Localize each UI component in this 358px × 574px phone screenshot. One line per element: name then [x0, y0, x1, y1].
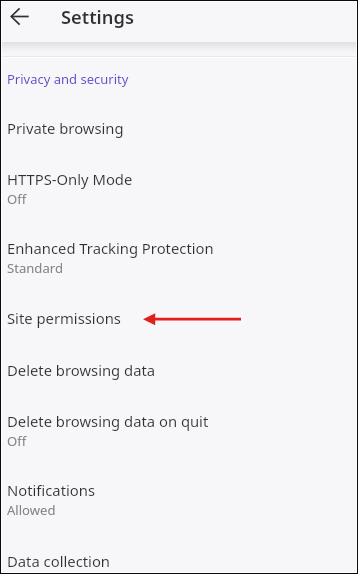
staticText: Data collection: [7, 551, 110, 571]
button[interactable]: Data collection: [2, 541, 356, 572]
staticText: Allowed: [7, 501, 56, 519]
staticText: Settings: [61, 4, 134, 29]
button[interactable]: HTTPS-Only Mode: [2, 159, 356, 229]
staticText: Notifications: [7, 480, 96, 500]
staticText: Delete browsing data: [7, 360, 156, 380]
staticText: Privacy and security: [7, 70, 129, 88]
button[interactable]: Delete browsing data on quit: [2, 401, 356, 470]
staticText: Private browsing: [7, 118, 124, 138]
staticText: Off: [7, 432, 27, 450]
button[interactable]: Notifications: [2, 470, 356, 540]
button[interactable]: Private browsing: [2, 108, 356, 159]
staticText: Enhanced Tracking Protection: [7, 238, 214, 258]
staticText: Delete browsing data on quit: [7, 411, 209, 431]
staticText: Standard: [7, 259, 63, 277]
button[interactable]: Enhanced Tracking Protection: [2, 228, 356, 298]
staticText: HTTPS-Only Mode: [7, 169, 133, 189]
staticText: Site permissions: [7, 308, 121, 328]
button[interactable]: Back: [10, 7, 32, 29]
staticText: Off: [7, 190, 27, 208]
button[interactable]: Delete browsing data: [2, 350, 356, 402]
button[interactable]: Site permissions: [2, 298, 356, 350]
